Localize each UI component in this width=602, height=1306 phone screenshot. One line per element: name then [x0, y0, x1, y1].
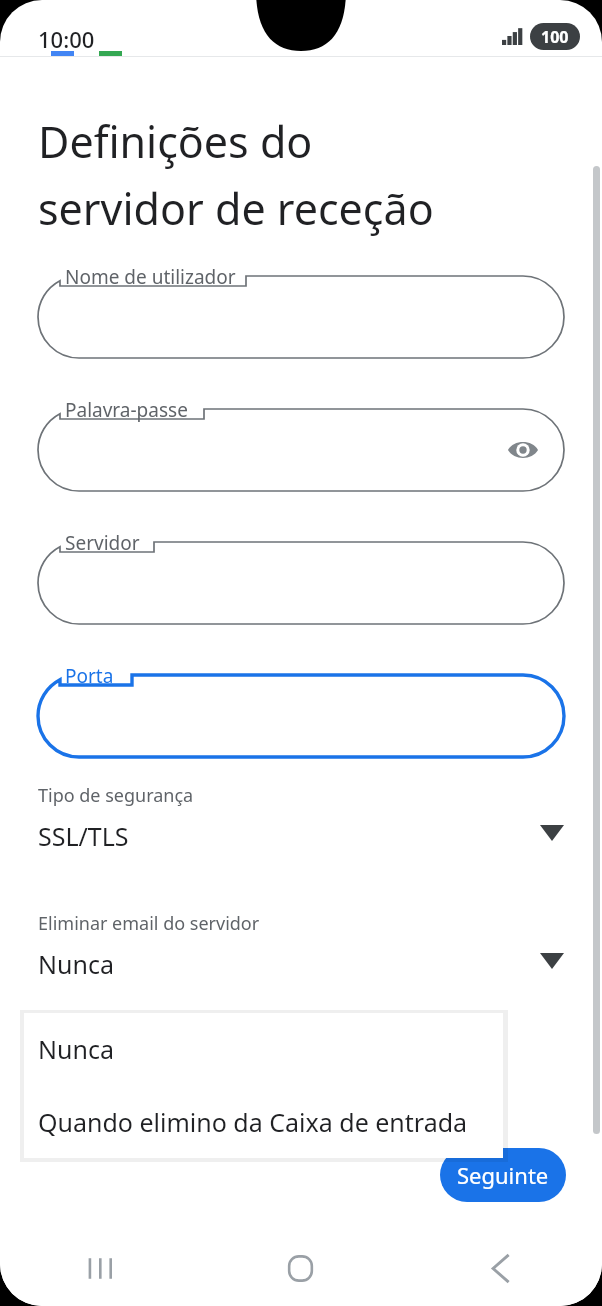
- button[interactable]: Servidor: [38, 527, 564, 624]
- staticText: 10:00: [38, 24, 95, 54]
- staticText: Quando elimino da Caixa de entrada: [38, 1105, 468, 1139]
- button[interactable]: Nome de utilizador: [38, 261, 564, 358]
- staticText: Definições do servidor de receção: [38, 112, 434, 237]
- button[interactable]: Mostrar palavra-passe: [500, 427, 546, 473]
- button[interactable]: Seguinte: [440, 1148, 566, 1202]
- button[interactable]: Início: [200, 1230, 401, 1306]
- staticText: Servidor: [65, 530, 140, 556]
- staticText: Tipo de segurança: [38, 783, 194, 808]
- button[interactable]: Voltar: [401, 1230, 602, 1306]
- button[interactable]: Porta: [38, 660, 564, 757]
- staticText: Nunca: [38, 1032, 114, 1066]
- staticText: Palavra-passe: [65, 397, 188, 423]
- button[interactable]: Recentes: [0, 1230, 200, 1306]
- button[interactable]: Nunca: [24, 1013, 503, 1085]
- staticText: Eliminar email do servidor: [38, 911, 260, 936]
- staticText: Seguinte: [457, 1160, 549, 1190]
- button[interactable]: Palavra-passe: [38, 394, 564, 491]
- staticText: SSL/TLS: [38, 819, 129, 853]
- staticText: Porta: [65, 663, 114, 689]
- staticText: Nome de utilizador: [65, 264, 236, 290]
- button[interactable]: Tipo de segurança: [38, 777, 564, 869]
- button[interactable]: Quando elimino da Caixa de entrada: [24, 1085, 503, 1158]
- button[interactable]: Eliminar email do servidor: [38, 905, 564, 997]
- staticText: 100: [541, 26, 569, 48]
- staticText: Nunca: [38, 947, 114, 981]
